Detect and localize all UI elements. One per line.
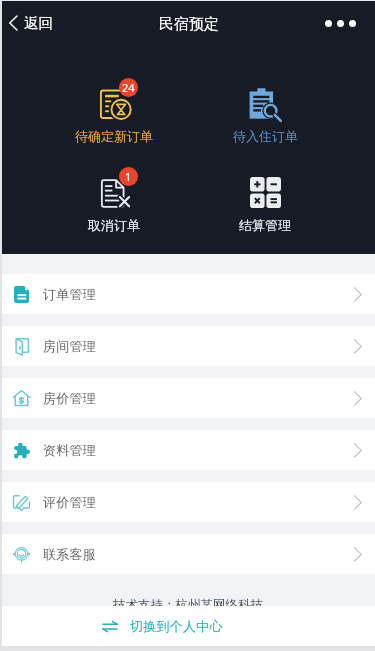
button[interactable]: 待入住订单 — [220, 78, 310, 150]
staticText: 待入住订单 — [233, 128, 298, 144]
button[interactable]: More options — [311, 0, 375, 46]
staticText: 技术支持：杭州某网络科技 — [113, 597, 263, 613]
staticText: 1 — [125, 169, 132, 184]
staticText: 切换到个人中心 — [130, 618, 223, 635]
button[interactable]: 切换到个人中心 — [0, 606, 375, 646]
button[interactable]: 订单管理 — [0, 274, 375, 314]
button[interactable]: 24 — [69, 78, 159, 150]
staticText: 房价管理 — [43, 390, 96, 407]
staticText: 资料管理 — [43, 442, 96, 459]
staticText: 取消订单 — [88, 217, 140, 233]
staticText: 结算管理 — [239, 217, 291, 233]
staticText: 返回 — [24, 14, 53, 32]
button[interactable]: 联系客服 — [0, 534, 375, 574]
button[interactable]: 房价管理 — [0, 378, 375, 418]
button[interactable]: 1 — [69, 167, 159, 239]
staticText: 评价管理 — [43, 494, 96, 511]
staticText: 24 — [122, 80, 135, 95]
staticText: 联系客服 — [43, 546, 96, 563]
staticText: 订单管理 — [43, 286, 96, 303]
staticText: 待确定新订单 — [75, 128, 153, 144]
button[interactable]: 评价管理 — [0, 482, 375, 522]
button[interactable]: 结算管理 — [220, 167, 310, 239]
button[interactable]: 返回 — [0, 0, 67, 46]
staticText: 房间管理 — [43, 338, 96, 355]
button[interactable]: 房间管理 — [0, 326, 375, 366]
button[interactable]: 资料管理 — [0, 430, 375, 470]
staticText: 民宿预定 — [159, 15, 219, 34]
